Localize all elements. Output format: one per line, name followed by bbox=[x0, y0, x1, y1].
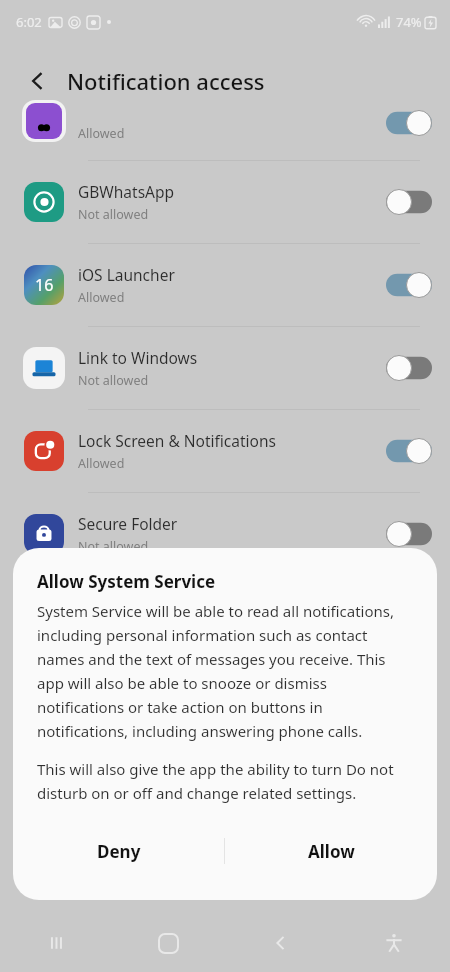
staticText: Not allowed bbox=[78, 538, 149, 555]
staticText: Not allowed bbox=[78, 206, 149, 223]
staticText: Allowed bbox=[78, 289, 125, 306]
staticText: Allowed bbox=[78, 125, 125, 142]
staticText: Allowed bbox=[78, 455, 125, 472]
button[interactable]: Deny bbox=[13, 814, 224, 888]
button[interactable]: Allowed toggle on bbox=[386, 438, 432, 464]
staticText: System Service will be able to read all … bbox=[37, 601, 413, 741]
button[interactable]: Allowed toggle off bbox=[386, 189, 432, 215]
staticText: Secure Folder bbox=[78, 513, 178, 534]
button[interactable]: Allowed toggle off bbox=[386, 355, 432, 381]
staticText: Not allowed bbox=[78, 372, 149, 389]
staticText: Allow System Service bbox=[37, 570, 216, 593]
button[interactable]: Allowed toggle off bbox=[386, 521, 432, 547]
staticText: Notification access bbox=[67, 66, 265, 96]
staticText: GBWhatsApp bbox=[78, 181, 175, 202]
staticText: Allow bbox=[308, 840, 355, 863]
button[interactable]: Link to Windows bbox=[0, 327, 450, 409]
button[interactable]: Back bbox=[18, 61, 58, 101]
button[interactable]: Allowed bbox=[0, 118, 450, 160]
staticText: 74% bbox=[396, 13, 422, 31]
button[interactable]: Accessibility bbox=[337, 914, 450, 972]
staticText: 16 bbox=[35, 274, 54, 296]
button[interactable]: Lock Screen & Notifications bbox=[0, 410, 450, 492]
button[interactable]: 16 bbox=[0, 244, 450, 326]
staticText: This will also give the app the ability … bbox=[37, 759, 413, 803]
staticText: Lock Screen & Notifications bbox=[78, 430, 276, 451]
button[interactable]: GBWhatsApp bbox=[0, 161, 450, 243]
button[interactable]: Allow bbox=[225, 814, 437, 888]
button[interactable]: Allowed toggle on bbox=[386, 110, 432, 136]
button[interactable]: Home bbox=[112, 914, 224, 972]
button[interactable]: Secure Folder bbox=[0, 493, 450, 575]
staticText: Link to Windows bbox=[78, 347, 198, 368]
staticText: iOS Launcher bbox=[78, 264, 175, 285]
staticText: Deny bbox=[97, 840, 141, 863]
staticText: 6:02 bbox=[16, 13, 42, 31]
button[interactable]: Allowed toggle on bbox=[386, 272, 432, 298]
